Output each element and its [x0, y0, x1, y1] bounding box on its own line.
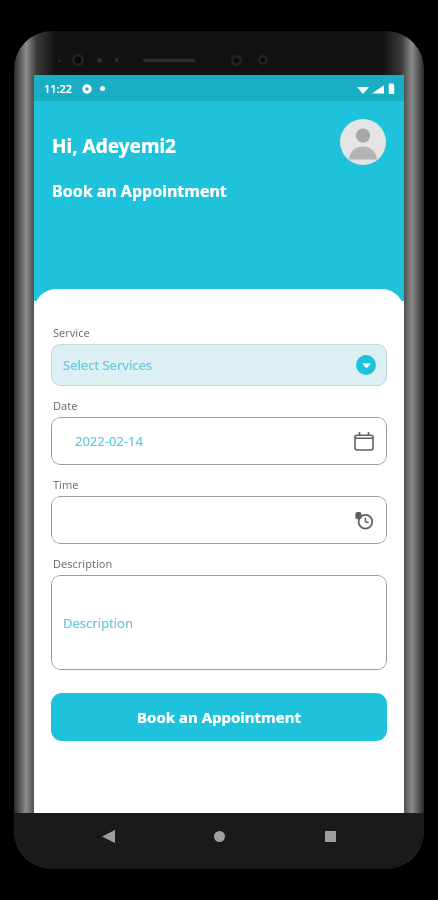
other: Open services dropdown — [356, 355, 376, 375]
staticText: Date — [53, 398, 78, 413]
button[interactable]: 2022-02-14 — [51, 417, 387, 465]
button[interactable]: Recents — [313, 819, 347, 853]
staticText: Select Services — [63, 356, 153, 374]
staticText: Service — [53, 325, 90, 340]
other: Pick date — [355, 432, 373, 450]
staticText: Book an Appointment — [52, 180, 227, 202]
button[interactable]: Select Services — [51, 344, 387, 386]
button[interactable]: Pick time — [51, 496, 387, 544]
other: Pick time — [355, 511, 373, 529]
staticText: Book an Appointment — [137, 707, 301, 727]
staticText: Hi, Adeyemi2 — [52, 133, 176, 159]
staticText: Description — [63, 614, 133, 632]
button[interactable]: Profile — [340, 119, 386, 165]
button[interactable]: Home — [202, 819, 236, 853]
button[interactable]: Description — [51, 575, 387, 670]
staticText: 2022-02-14 — [75, 432, 143, 450]
staticText: 11:22 — [44, 81, 73, 96]
button[interactable]: Book an Appointment — [51, 693, 387, 741]
staticText: Time — [53, 477, 79, 492]
button[interactable]: Back — [91, 819, 125, 853]
staticText: Description — [53, 556, 113, 571]
